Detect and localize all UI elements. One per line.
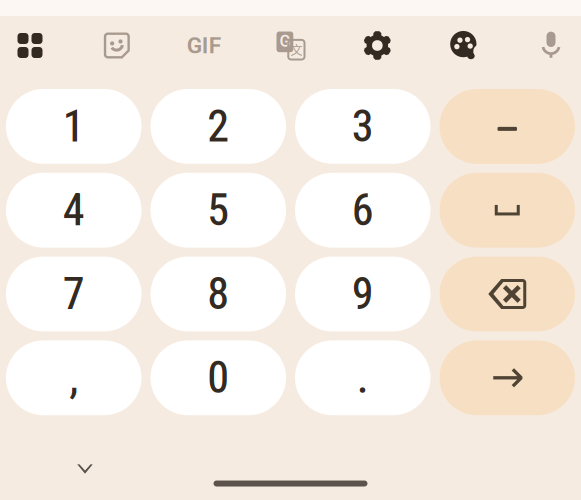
button[interactable]: 9 [295, 257, 430, 331]
staticText: 4 [63, 184, 85, 236]
button[interactable]: Backspace [439, 257, 575, 331]
staticText: , [69, 352, 78, 404]
button[interactable]: GIF [175, 16, 233, 75]
button[interactable]: Stickers [88, 16, 146, 75]
staticText: 0 [207, 352, 229, 404]
button[interactable]: . [295, 340, 430, 415]
button[interactable]: Symbols [1, 16, 59, 75]
staticText: GIF [187, 32, 221, 59]
button[interactable]: Minus [439, 89, 575, 164]
button[interactable]: Hide keyboard [59, 449, 111, 489]
button[interactable]: 3 [295, 89, 430, 164]
staticText: 文 [290, 41, 302, 58]
button[interactable]: Translate [261, 16, 319, 75]
button[interactable]: 1 [6, 89, 141, 164]
staticText: 5 [207, 184, 229, 236]
staticText: 7 [63, 268, 85, 320]
button[interactable]: 4 [6, 173, 141, 248]
button[interactable]: 5 [150, 173, 286, 248]
button[interactable]: , [6, 340, 141, 415]
button[interactable]: Enter [439, 340, 575, 415]
button[interactable]: Settings [348, 16, 406, 75]
staticText: 9 [352, 268, 374, 320]
button[interactable]: Themes [435, 16, 493, 75]
button[interactable]: 7 [6, 257, 141, 331]
button[interactable]: Voice input [522, 16, 580, 75]
staticText: 3 [352, 101, 374, 152]
button[interactable]: 8 [150, 257, 286, 331]
staticText: 6 [352, 184, 374, 236]
staticText: . [357, 352, 369, 404]
staticText: 1 [63, 101, 85, 152]
button[interactable]: 2 [150, 89, 286, 164]
button[interactable]: Space [439, 173, 575, 248]
button[interactable]: 0 [150, 340, 286, 415]
staticText: 8 [207, 268, 229, 320]
staticText: G [279, 32, 290, 51]
staticText: 2 [207, 101, 229, 152]
button[interactable]: 6 [295, 173, 430, 248]
